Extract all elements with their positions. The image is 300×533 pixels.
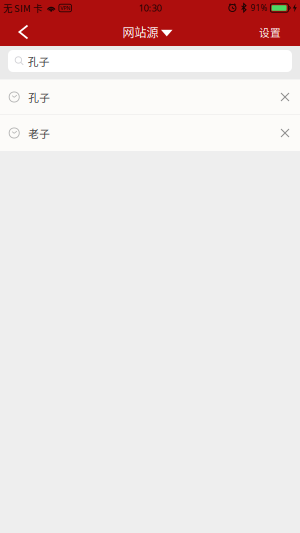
staticText: 老子	[28, 125, 50, 141]
button[interactable]: 设置	[240, 18, 300, 46]
staticText: 设置	[259, 24, 281, 40]
button[interactable]: 孔子	[8, 50, 292, 72]
staticText: VPN	[60, 4, 70, 12]
button[interactable]: 老子	[0, 115, 300, 151]
staticText: 无 SIM 卡	[3, 1, 42, 15]
staticText: 孔子	[28, 89, 50, 105]
staticText: 10:30	[138, 2, 161, 14]
button[interactable]: 孔子	[0, 79, 300, 114]
staticText: 91%	[250, 3, 267, 13]
button[interactable]: 返回	[0, 18, 46, 46]
button[interactable]: 网站源	[116, 18, 183, 46]
staticText: 网站源	[122, 23, 158, 41]
staticText: 孔子	[28, 53, 50, 69]
